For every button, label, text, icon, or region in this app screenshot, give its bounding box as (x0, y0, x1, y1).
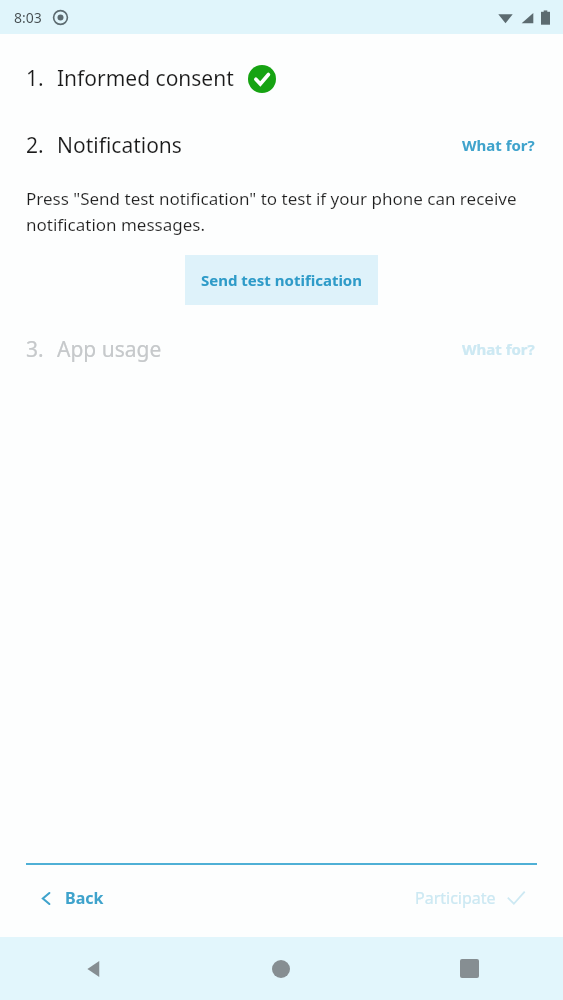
staticText: Press "Send test notification" to test i… (26, 187, 537, 236)
button[interactable]: Back (26, 877, 118, 919)
button[interactable]: Recent apps (375, 937, 563, 1000)
staticText: 3. (26, 335, 44, 364)
button[interactable]: Back (0, 937, 187, 1000)
button[interactable]: What for? (460, 129, 537, 161)
button[interactable]: Send test notification (185, 255, 378, 305)
staticText: Participate (415, 887, 496, 909)
staticText: Notifications (57, 131, 182, 160)
staticText: 8:03 (14, 8, 42, 27)
other: Completed (248, 65, 276, 93)
staticText: Back (65, 887, 104, 909)
other: Participate (507, 889, 525, 907)
staticText: What for? (462, 135, 535, 155)
button[interactable]: Participate (403, 877, 537, 919)
staticText: App usage (57, 335, 162, 364)
button[interactable]: Home (187, 937, 375, 1000)
staticText: 1. (26, 64, 44, 93)
staticText: Send test notification (201, 270, 362, 290)
staticText: What for? (462, 339, 535, 359)
other: Back (40, 892, 53, 905)
staticText: Informed consent (57, 64, 234, 93)
button[interactable]: 1. (0, 60, 563, 97)
staticText: 2. (26, 131, 44, 160)
